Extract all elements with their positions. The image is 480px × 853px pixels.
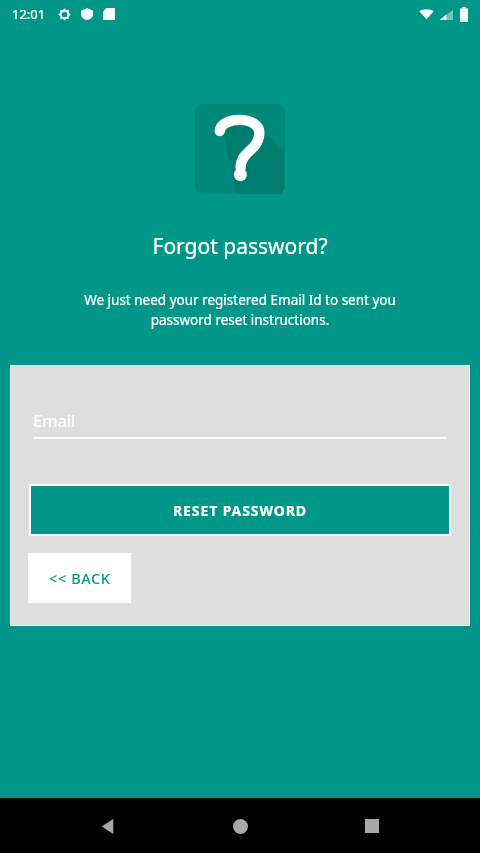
button[interactable]: Home: [216, 802, 264, 850]
staticText: RESET PASSWORD: [173, 501, 307, 520]
button[interactable]: RESET PASSWORD: [31, 486, 449, 534]
button[interactable]: << BACK: [28, 553, 131, 603]
button[interactable]: Email: [33, 403, 447, 437]
staticText: Forgot password?: [0, 232, 480, 261]
staticText: 12:01: [12, 5, 46, 23]
staticText: We just need your registered Email Id to…: [58, 291, 422, 329]
staticText: << BACK: [49, 568, 111, 588]
button[interactable]: Recent apps: [348, 802, 396, 850]
staticText: Email: [33, 409, 76, 431]
button[interactable]: Back: [84, 802, 132, 850]
